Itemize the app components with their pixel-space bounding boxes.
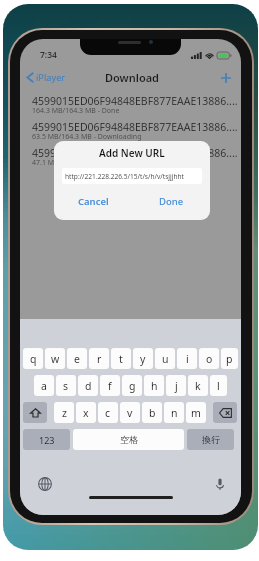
staticText: r — [97, 352, 102, 366]
staticText: c — [105, 406, 111, 420]
button[interactable]: y — [133, 348, 153, 369]
button[interactable]: Dictate — [212, 476, 228, 492]
button[interactable]: u — [155, 348, 175, 369]
staticText: d — [85, 379, 92, 393]
button[interactable]: g — [122, 375, 142, 396]
button[interactable]: x — [76, 402, 96, 423]
button[interactable] — [23, 402, 47, 423]
staticText: p — [226, 352, 233, 366]
button[interactable]: 換行 — [187, 429, 234, 450]
staticText: 47.1 MB/164.3 MB - Downloading — [32, 158, 142, 168]
staticText: j — [175, 379, 178, 393]
button[interactable]: v — [120, 402, 140, 423]
staticText: t — [119, 352, 123, 366]
button[interactable]: l — [210, 375, 227, 396]
staticText: Download — [105, 70, 159, 85]
button[interactable]: e — [67, 348, 87, 369]
staticText: o — [206, 352, 213, 366]
button[interactable]: f — [100, 375, 120, 396]
staticText: u — [162, 352, 169, 366]
button[interactable]: b — [142, 402, 162, 423]
staticText: Cancel — [78, 195, 109, 208]
staticText: k — [195, 379, 201, 393]
button[interactable]: o — [199, 348, 219, 369]
staticText: 164.3 MB/164.3 MB - Done — [32, 106, 120, 116]
staticText: m — [191, 406, 201, 420]
button[interactable]: d — [78, 375, 98, 396]
staticText: 4599015ED06F94848EBF877EAAE13886.... — [32, 146, 238, 160]
staticText: Done — [159, 195, 184, 208]
staticText: x — [83, 406, 89, 420]
button[interactable]: i — [177, 348, 197, 369]
button[interactable]: 4599015ED06F94848EBF877EAAE13886.... — [20, 119, 241, 145]
staticText: 4599015ED06F94848EBF877EAAE13886.... — [32, 94, 238, 108]
button[interactable]: j — [166, 375, 186, 396]
button[interactable]: h — [144, 375, 164, 396]
button[interactable]: Cancel — [54, 191, 132, 211]
staticText: l — [217, 379, 220, 393]
button[interactable]: n — [164, 402, 184, 423]
staticText: w — [51, 352, 60, 366]
staticText: 空格 — [120, 434, 138, 445]
staticText: h — [151, 379, 158, 393]
button[interactable]: Change keyboard — [37, 476, 53, 492]
staticText: 63.5 MB/164.3 MB - Downloading — [32, 132, 142, 142]
staticText: 123 — [39, 434, 55, 446]
staticText: a — [41, 379, 47, 393]
button[interactable]: 123 — [23, 429, 70, 450]
staticText: iPlayer — [36, 71, 66, 84]
button[interactable]: q — [23, 348, 43, 369]
button[interactable]: p — [221, 348, 238, 369]
button[interactable]: Done — [132, 191, 210, 211]
staticText: q — [30, 352, 37, 366]
button[interactable]: s — [56, 375, 76, 396]
staticText: 7:34 — [40, 49, 57, 61]
staticText: http://221.228.226.5/15/t/s/h/v/tsjjjhht — [65, 172, 184, 181]
button[interactable] — [213, 402, 237, 423]
button[interactable]: w — [45, 348, 65, 369]
button[interactable]: 空格 — [73, 429, 184, 450]
button[interactable]: Add new download — [217, 69, 235, 87]
staticText: n — [171, 406, 178, 420]
staticText: e — [74, 352, 80, 366]
button[interactable]: r — [89, 348, 109, 369]
button[interactable]: 4599015ED06F94848EBF877EAAE13886.... — [20, 93, 241, 119]
button[interactable]: http://221.228.226.5/15/t/s/h/v/tsjjjhht — [62, 168, 202, 184]
button[interactable]: c — [98, 402, 118, 423]
staticText: s — [63, 379, 69, 393]
button[interactable]: k — [188, 375, 208, 396]
button[interactable]: 4599015ED06F94848EBF877EAAE13886.... — [20, 145, 241, 171]
staticText: y — [140, 352, 146, 366]
staticText: 換行 — [202, 434, 220, 445]
staticText: b — [149, 406, 156, 420]
staticText: z — [62, 406, 67, 420]
button[interactable]: t — [111, 348, 131, 369]
button[interactable]: a — [34, 375, 54, 396]
staticText: g — [129, 379, 136, 393]
staticText: Add New URL — [99, 146, 165, 160]
staticText: 4599015ED06F94848EBF877EAAE13886.... — [32, 120, 238, 134]
button[interactable]: m — [186, 402, 206, 423]
staticText: i — [186, 352, 189, 366]
button[interactable]: z — [54, 402, 74, 423]
staticText: v — [127, 406, 133, 420]
staticText: f — [108, 379, 112, 393]
button[interactable]: iPlayer — [24, 69, 68, 86]
